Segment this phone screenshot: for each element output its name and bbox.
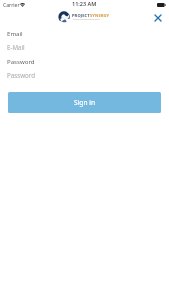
staticText: 11:23 AM — [72, 0, 97, 7]
staticText: Password — [7, 57, 35, 65]
staticText: Carrier — [3, 2, 20, 9]
staticText: Sign in — [74, 98, 95, 107]
staticText: Email — [7, 29, 23, 37]
button[interactable]: E-Mail — [0, 42, 169, 52]
button[interactable]: Sign in — [8, 92, 161, 113]
button[interactable]: Password — [0, 70, 169, 80]
staticText: Project Management Software — [73, 18, 100, 21]
button[interactable]: Close — [151, 11, 165, 25]
staticText: E-Mail — [7, 43, 25, 51]
staticText: SYNERGY — [90, 13, 110, 19]
staticText: PROJECT — [72, 13, 90, 19]
staticText: Password — [7, 71, 35, 79]
